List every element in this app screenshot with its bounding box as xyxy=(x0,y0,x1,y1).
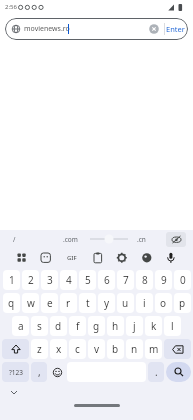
button[interactable]: w xyxy=(22,293,39,313)
staticText: b xyxy=(112,342,119,356)
button[interactable] xyxy=(149,24,159,34)
button[interactable] xyxy=(164,339,191,359)
staticText: 0 xyxy=(180,273,186,287)
staticText: o xyxy=(160,296,167,310)
staticText: u xyxy=(122,296,129,310)
button[interactable]: 0 xyxy=(174,270,191,290)
button[interactable] xyxy=(10,390,18,395)
button[interactable]: 2 xyxy=(22,270,39,290)
button[interactable]: . xyxy=(148,362,164,382)
button[interactable]: 4 xyxy=(60,270,77,290)
button[interactable]: z xyxy=(31,339,48,359)
staticText: 2 xyxy=(28,273,34,287)
button[interactable]: r xyxy=(60,293,77,313)
button[interactable]: q xyxy=(3,293,20,313)
button[interactable]: , xyxy=(31,362,47,382)
staticText: GIF xyxy=(67,254,77,262)
button[interactable]: m xyxy=(145,339,162,359)
button[interactable]: c xyxy=(69,339,86,359)
button[interactable]: p xyxy=(174,293,191,313)
staticText: y xyxy=(104,296,110,310)
staticText: , xyxy=(38,365,41,379)
button[interactable]: .com xyxy=(56,230,84,248)
button[interactable]: e xyxy=(41,293,58,313)
staticText: 4 xyxy=(66,273,72,287)
button[interactable]: j xyxy=(126,316,143,336)
button[interactable]: movienews.ro xyxy=(5,18,188,40)
staticText: f xyxy=(76,319,80,333)
button[interactable] xyxy=(39,251,53,265)
staticText: k xyxy=(151,319,157,333)
staticText: v xyxy=(94,342,100,356)
button[interactable]: 7 xyxy=(117,270,134,290)
button[interactable]: t xyxy=(79,293,96,313)
staticText: movienews.ro xyxy=(24,24,70,34)
staticText: r xyxy=(66,296,71,310)
button[interactable] xyxy=(2,339,29,359)
button[interactable]: ?123 xyxy=(2,362,29,382)
staticText: i xyxy=(143,296,146,310)
staticText: Enter xyxy=(166,24,185,34)
button[interactable]: f xyxy=(69,316,86,336)
staticText: l xyxy=(171,319,174,333)
button[interactable] xyxy=(49,362,65,382)
staticText: 6 xyxy=(104,273,110,287)
button[interactable]: 5 xyxy=(79,270,96,290)
button[interactable]: n xyxy=(126,339,143,359)
button[interactable]: i xyxy=(136,293,153,313)
button[interactable] xyxy=(15,251,29,265)
staticText: z xyxy=(37,342,42,356)
staticText: n xyxy=(131,342,138,356)
button[interactable]: h xyxy=(107,316,124,336)
staticText: t xyxy=(86,296,90,310)
staticText: g xyxy=(93,319,100,333)
button[interactable]: y xyxy=(98,293,115,313)
staticText: 2:56 xyxy=(5,3,17,11)
button[interactable]: 3 xyxy=(41,270,58,290)
button[interactable]: l xyxy=(164,316,181,336)
button[interactable]: .cn xyxy=(130,230,152,248)
button[interactable]: u xyxy=(117,293,134,313)
button[interactable]: Enter xyxy=(163,18,187,40)
button[interactable] xyxy=(164,251,178,265)
staticText: .com xyxy=(63,235,78,244)
button[interactable]: k xyxy=(145,316,162,336)
button[interactable] xyxy=(166,362,191,382)
staticText: d xyxy=(55,319,62,333)
staticText: 1 xyxy=(9,273,15,287)
button[interactable]: 8 xyxy=(136,270,153,290)
button[interactable]: 1 xyxy=(3,270,20,290)
staticText: w xyxy=(27,296,35,310)
staticText: . xyxy=(155,365,158,379)
button[interactable]: s xyxy=(31,316,48,336)
button[interactable]: a xyxy=(12,316,29,336)
button[interactable]: b xyxy=(107,339,124,359)
staticText: m xyxy=(149,342,159,356)
button[interactable] xyxy=(166,232,186,247)
button[interactable]: o xyxy=(155,293,172,313)
staticText: q xyxy=(8,296,15,310)
button[interactable]: x xyxy=(50,339,67,359)
staticText: .cn xyxy=(137,235,146,244)
staticText: 9 xyxy=(161,273,167,287)
button[interactable]: g xyxy=(88,316,105,336)
button[interactable]: / xyxy=(4,230,24,248)
staticText: s xyxy=(37,319,42,333)
button[interactable]: GIF xyxy=(64,252,80,264)
staticText: j xyxy=(133,319,136,333)
button[interactable]: 6 xyxy=(98,270,115,290)
staticText: 3 xyxy=(47,273,53,287)
button[interactable] xyxy=(140,251,154,265)
button[interactable] xyxy=(91,251,105,265)
button[interactable]: 9 xyxy=(155,270,172,290)
staticText: 8 xyxy=(142,273,148,287)
staticText: a xyxy=(18,319,24,333)
staticText: 7 xyxy=(123,273,129,287)
button[interactable]: d xyxy=(50,316,67,336)
staticText: x xyxy=(56,342,62,356)
button[interactable]: v xyxy=(88,339,105,359)
staticText: p xyxy=(179,296,186,310)
staticText: / xyxy=(13,235,16,244)
button[interactable] xyxy=(115,251,129,265)
